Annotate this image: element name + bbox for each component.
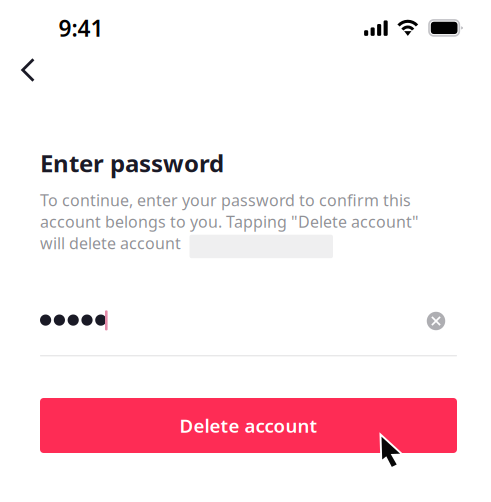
- staticText: will delete account: [40, 232, 181, 254]
- staticText: 9:41: [58, 13, 103, 43]
- button[interactable]: Clear text: [421, 306, 451, 336]
- staticText: Delete account: [179, 413, 317, 438]
- staticText: To continue, enter your password to conf…: [40, 189, 411, 211]
- staticText: account belongs to you. Tapping "Delete …: [40, 211, 419, 232]
- button[interactable]: Delete account: [40, 398, 457, 453]
- button[interactable]: Back: [4, 46, 52, 94]
- button[interactable]: Password: [40, 300, 457, 356]
- staticText: Enter password: [40, 147, 224, 179]
